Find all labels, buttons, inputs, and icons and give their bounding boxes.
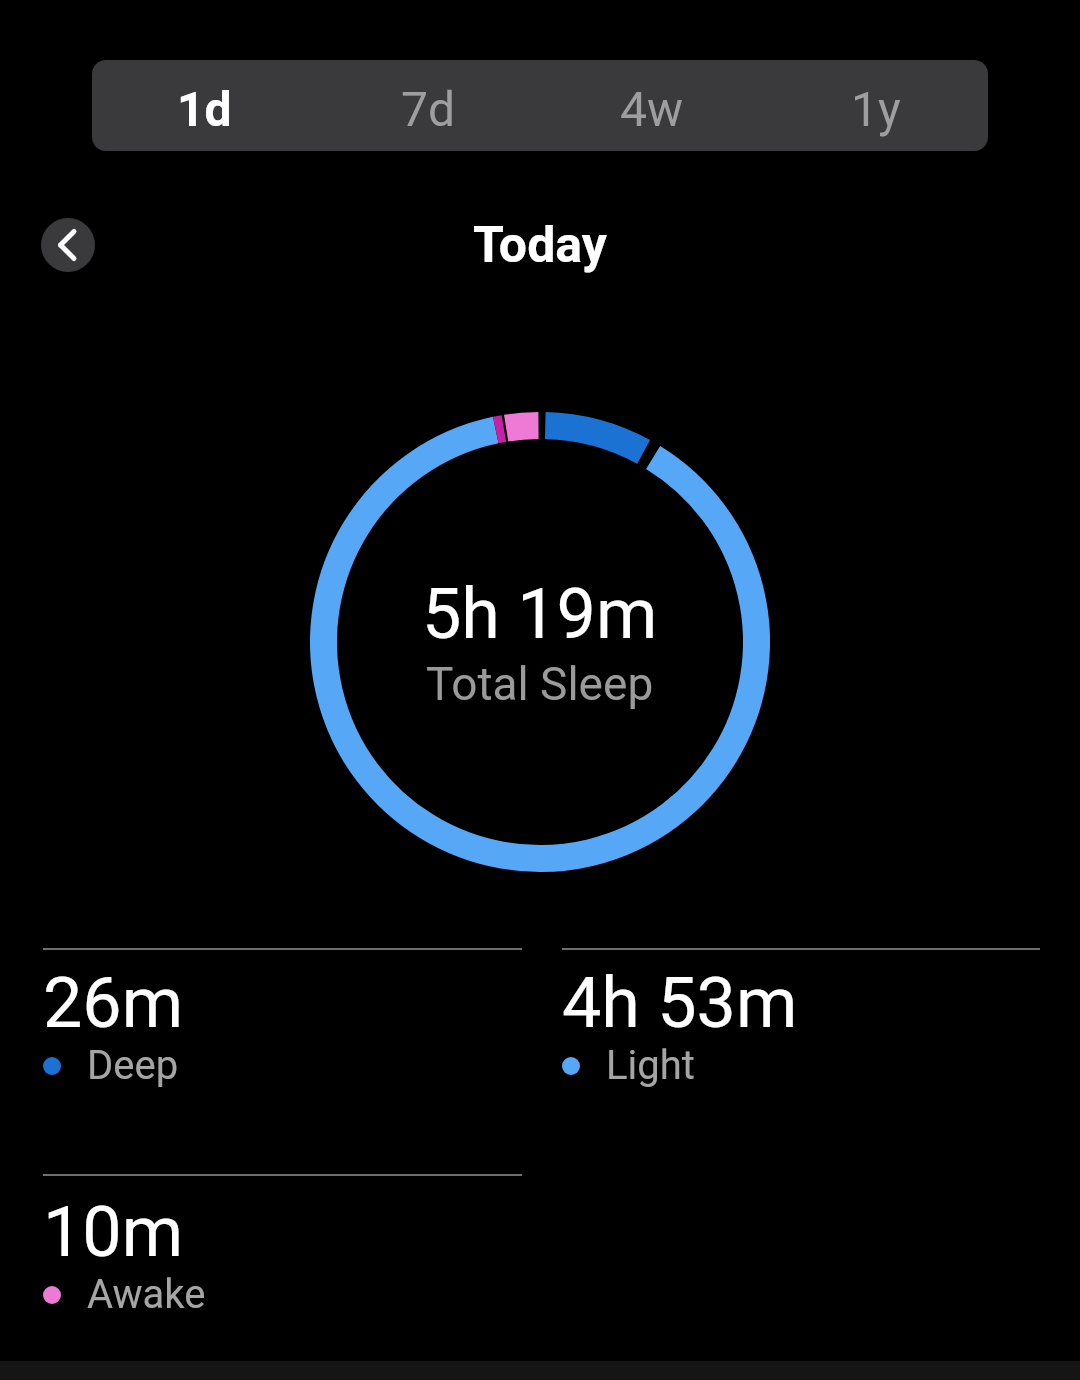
button[interactable] <box>41 218 95 272</box>
staticText: 5h 19m <box>422 573 658 655</box>
staticText: Today <box>473 216 607 275</box>
staticText: Light <box>606 1042 695 1089</box>
staticText: Deep <box>87 1042 179 1089</box>
staticText: Total Sleep <box>426 657 654 711</box>
staticText: 4h 53m <box>562 962 798 1044</box>
staticText: 1d <box>177 81 232 137</box>
staticText: 10m <box>43 1191 184 1273</box>
button[interactable]: 4w <box>540 60 764 151</box>
button[interactable]: 1d <box>92 60 316 151</box>
staticText: 26m <box>43 962 184 1044</box>
staticText: 7d <box>401 81 456 137</box>
staticText: 4w <box>620 81 684 137</box>
button[interactable]: 1y <box>764 60 988 151</box>
staticText: Awake <box>87 1271 206 1318</box>
staticText: 1y <box>851 81 901 137</box>
button[interactable]: 7d <box>316 60 540 151</box>
